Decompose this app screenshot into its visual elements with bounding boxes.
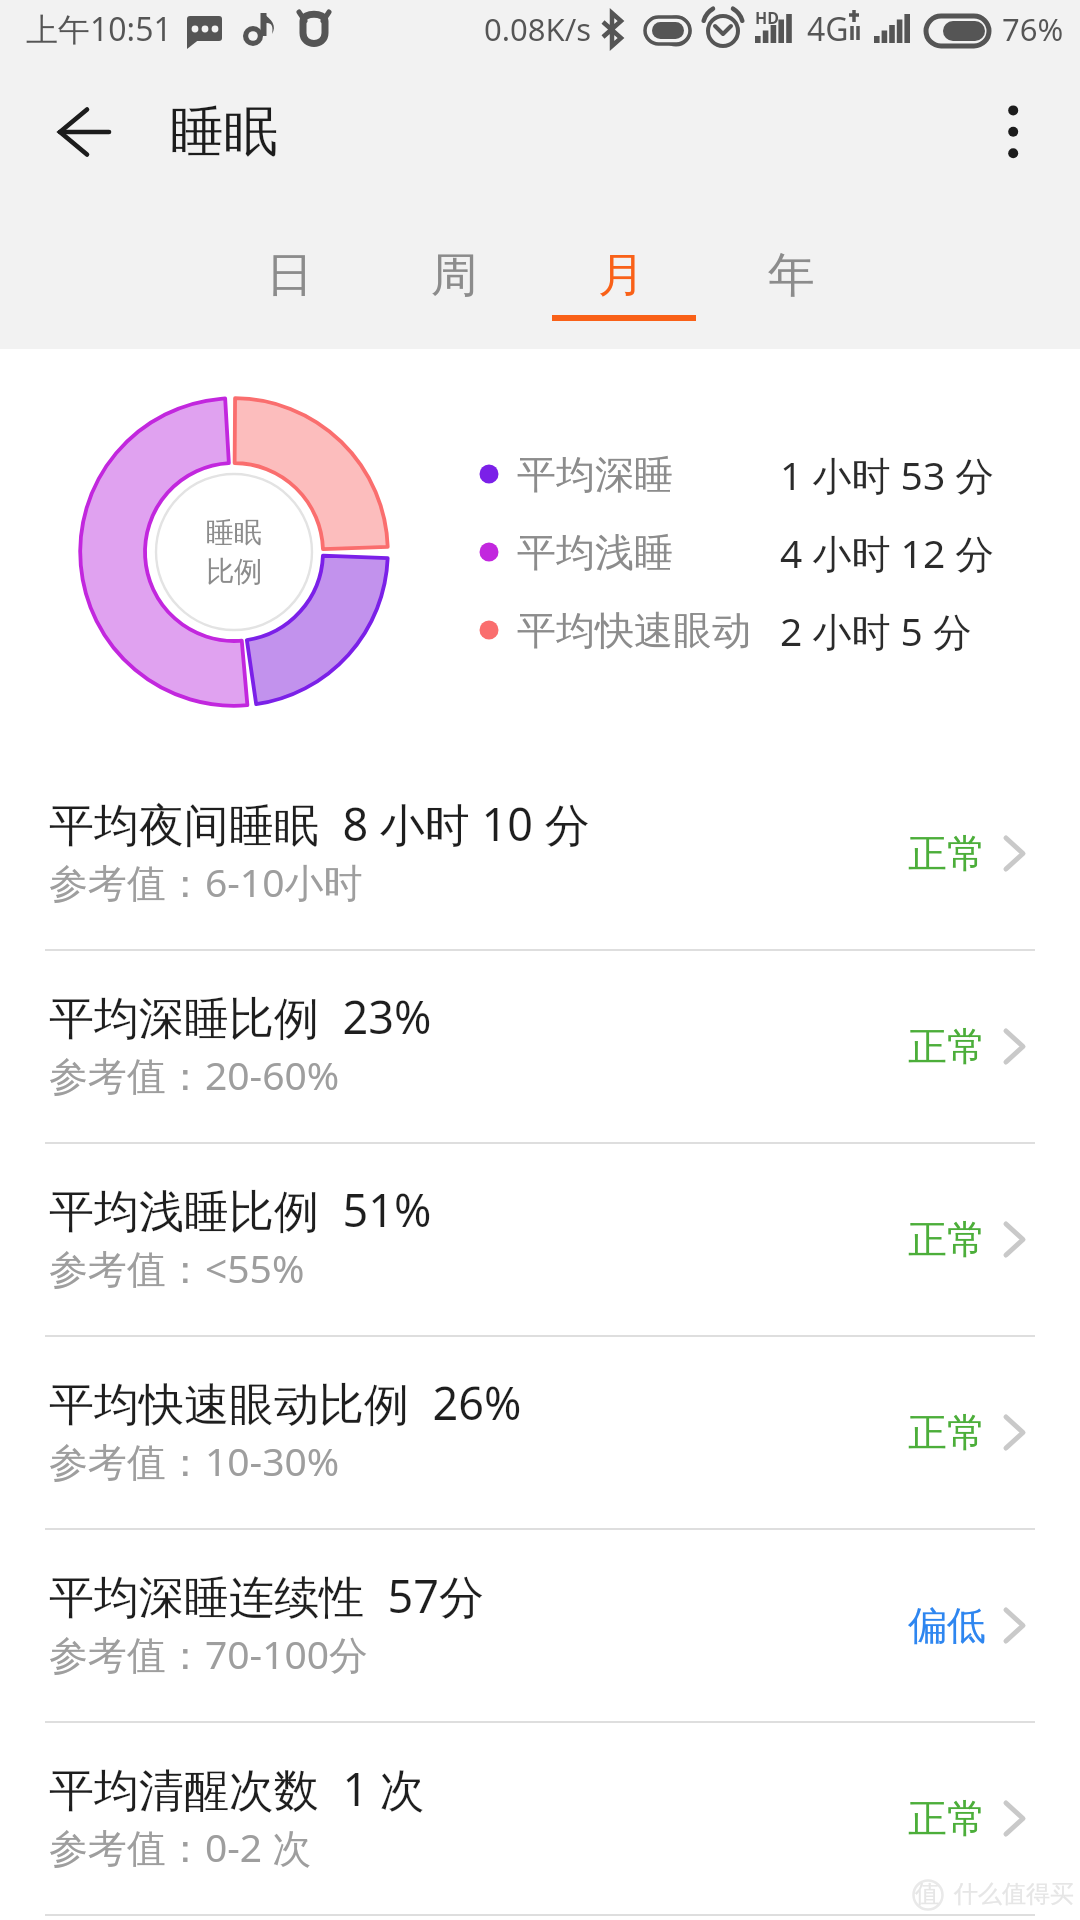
staticText: 2 小时 5 分 (780, 604, 973, 657)
staticText: 4 小时 12 分 (780, 526, 995, 579)
staticText: 参考值：20-60% (49, 1048, 340, 1101)
button[interactable]: 平均快速眼动比例 26% (0, 1335, 1080, 1528)
staticText: 平均快速眼动比例 26% (49, 1372, 522, 1433)
button[interactable]: 平均清醒次数 1 次 (0, 1721, 1080, 1914)
staticText: 周 (431, 246, 478, 305)
button[interactable]: 平均深睡连续性 57分 (0, 1528, 1080, 1721)
staticText: 4G (807, 7, 849, 51)
staticText: 平均深睡比例 23% (49, 986, 432, 1047)
staticText: 正常 (908, 1215, 986, 1264)
staticText: 参考值：70-100分 (49, 1627, 369, 1680)
staticText: HD (755, 7, 779, 29)
button[interactable]: Back (24, 72, 144, 192)
button[interactable]: More options (965, 76, 1061, 172)
staticText: 参考值：<55% (49, 1241, 305, 1294)
staticText: 平均浅睡 (517, 528, 673, 577)
button[interactable]: 周 (372, 215, 536, 335)
button[interactable]: 年 (709, 215, 873, 335)
staticText: 76% (1002, 8, 1064, 50)
staticText: 正常 (908, 829, 986, 878)
staticText: 平均深睡 (517, 450, 673, 499)
staticText: 平均清醒次数 1 次 (49, 1758, 425, 1819)
staticText: 日 (266, 246, 313, 305)
staticText: 比例 (206, 554, 262, 589)
staticText: 上午10:51 (26, 7, 172, 51)
staticText: 年 (768, 246, 815, 305)
button[interactable]: 平均深睡比例 23% (0, 949, 1080, 1142)
staticText: 正常 (908, 1408, 986, 1457)
staticText: 平均浅睡比例 51% (49, 1179, 432, 1240)
staticText: 正常 (908, 1022, 986, 1071)
staticText: 平均夜间睡眠 8 小时 10 分 (49, 793, 590, 854)
staticText: 睡眠 (170, 98, 278, 166)
button[interactable]: 日 (207, 215, 371, 335)
staticText: 睡眠 (206, 515, 262, 550)
staticText: 值 (915, 1879, 939, 1909)
button[interactable]: 平均浅睡比例 51% (0, 1142, 1080, 1335)
staticText: 月 (598, 246, 645, 305)
staticText: 什么值得买 (954, 1879, 1074, 1909)
staticText: 平均深睡连续性 57分 (49, 1565, 484, 1626)
button[interactable]: 平均夜间睡眠 8 小时 10 分 (0, 756, 1080, 949)
staticText: 平均快速眼动 (517, 606, 751, 655)
staticText: 0.08K/s (484, 8, 592, 50)
staticText: 1 小时 53 分 (780, 448, 995, 501)
staticText: 参考值：10-30% (49, 1434, 340, 1487)
staticText: 正常 (908, 1794, 986, 1843)
button[interactable]: 月 (539, 215, 703, 335)
staticText: 参考值：6-10小时 (49, 855, 363, 908)
staticText: 偏低 (908, 1601, 986, 1650)
staticText: 参考值：0-2 次 (49, 1820, 312, 1873)
